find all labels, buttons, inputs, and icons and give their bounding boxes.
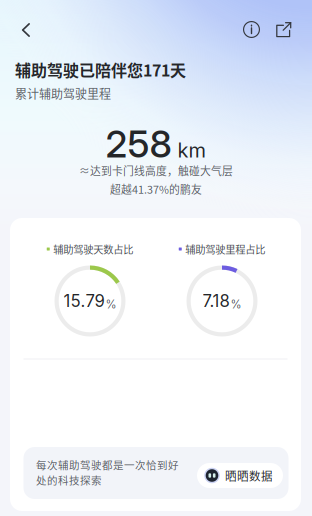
staticText: 每次辅助驾驶都是一次恰到好处的科技探索: [36, 457, 179, 487]
staticText: 辅助驾驶里程占比: [185, 241, 265, 256]
staticText: %: [105, 297, 116, 311]
staticText: 15.79: [63, 291, 104, 311]
button[interactable]: Info: [235, 13, 267, 45]
button[interactable]: Back: [5, 11, 47, 49]
staticText: 7.18: [202, 291, 229, 311]
staticText: ≈达到卡门线高度，触碰大气层: [79, 163, 233, 178]
staticText: 超越41.37%的鹏友: [110, 181, 202, 197]
staticText: 258: [105, 121, 171, 166]
staticText: %: [230, 297, 241, 311]
staticText: 辅助驾驶天数占比: [53, 241, 133, 256]
staticText: 晒晒数据: [225, 467, 273, 484]
button[interactable]: Share: [267, 13, 299, 45]
button[interactable]: 晒晒数据: [197, 463, 283, 488]
staticText: 辅助驾驶已陪伴您171天: [15, 58, 186, 81]
staticText: km: [177, 138, 205, 162]
staticText: 累计辅助驾驶里程: [15, 85, 111, 102]
